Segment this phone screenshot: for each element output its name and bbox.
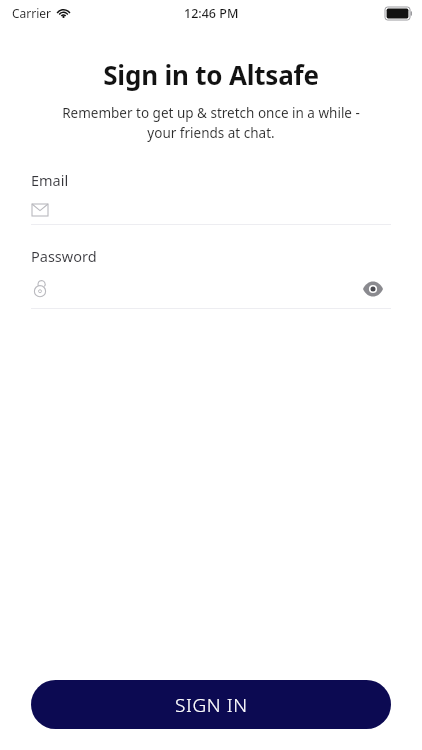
staticText: Remember to get up & stretch once in a w… [54, 104, 368, 142]
staticText: Password [31, 246, 97, 266]
button[interactable] [31, 196, 391, 224]
staticText: 12:46 PM [184, 5, 239, 22]
staticText: Email [31, 170, 69, 190]
staticText: Carrier [12, 5, 52, 21]
staticText: SIGN IN [175, 692, 248, 718]
button[interactable]: SIGN IN [31, 680, 391, 729]
button[interactable]: Show password [355, 273, 391, 305]
button[interactable]: Show password [31, 272, 391, 304]
staticText: Sign in to Altsafe [0, 57, 422, 92]
